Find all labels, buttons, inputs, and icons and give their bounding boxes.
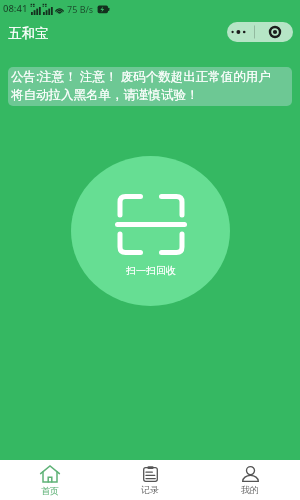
staticText: 公告:注意！ 注意！ 废码个数超出正常值的用户 将自动拉入黑名单，请谨慎试验！	[11, 68, 292, 102]
button[interactable]: 我的	[200, 460, 300, 500]
staticText: 首页	[41, 485, 59, 496]
button[interactable]: 公告:注意！ 注意！ 废码个数超出正常值的用户 将自动拉入黑名单，请谨慎试验！	[8, 67, 292, 106]
button[interactable]: More options	[227, 22, 293, 42]
staticText: 扫一扫回收	[126, 264, 176, 277]
button[interactable]: 首页	[0, 460, 100, 500]
button[interactable]: 扫一扫回收	[71, 156, 230, 306]
staticText: 75 B/s	[67, 3, 94, 15]
staticText: 08:41	[3, 2, 28, 15]
button[interactable]: 记录	[100, 460, 200, 500]
staticText: 五和宝	[8, 25, 49, 42]
staticText: 我的	[241, 484, 259, 495]
staticText: 记录	[141, 484, 159, 495]
